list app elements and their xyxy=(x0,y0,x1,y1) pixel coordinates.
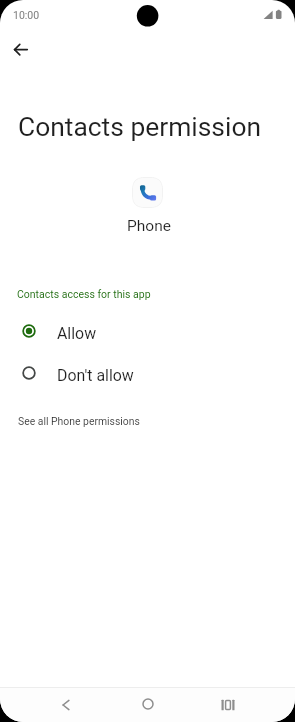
button[interactable]: Back xyxy=(8,38,32,62)
staticText: 10:00 xyxy=(13,9,40,21)
staticText: Contacts access for this app xyxy=(17,288,151,300)
button[interactable]: Home xyxy=(126,688,170,720)
button[interactable]: Recents xyxy=(206,689,250,721)
staticText: See all Phone permissions xyxy=(18,415,140,427)
button[interactable]: Don't allow xyxy=(0,354,295,396)
staticText: Phone xyxy=(127,217,171,235)
button[interactable]: See all Phone permissions xyxy=(10,411,148,431)
staticText: Contacts permission xyxy=(18,112,262,143)
staticText: Don't allow xyxy=(57,366,134,385)
button[interactable]: Allow xyxy=(0,312,295,354)
staticText: Allow xyxy=(57,324,97,343)
button[interactable]: Back xyxy=(44,689,88,721)
